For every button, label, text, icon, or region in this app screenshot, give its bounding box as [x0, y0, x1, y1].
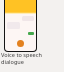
staticText: Voice to speech [1, 51, 42, 58]
button[interactable]: Record [17, 40, 24, 47]
staticText: dialogue [1, 58, 24, 65]
